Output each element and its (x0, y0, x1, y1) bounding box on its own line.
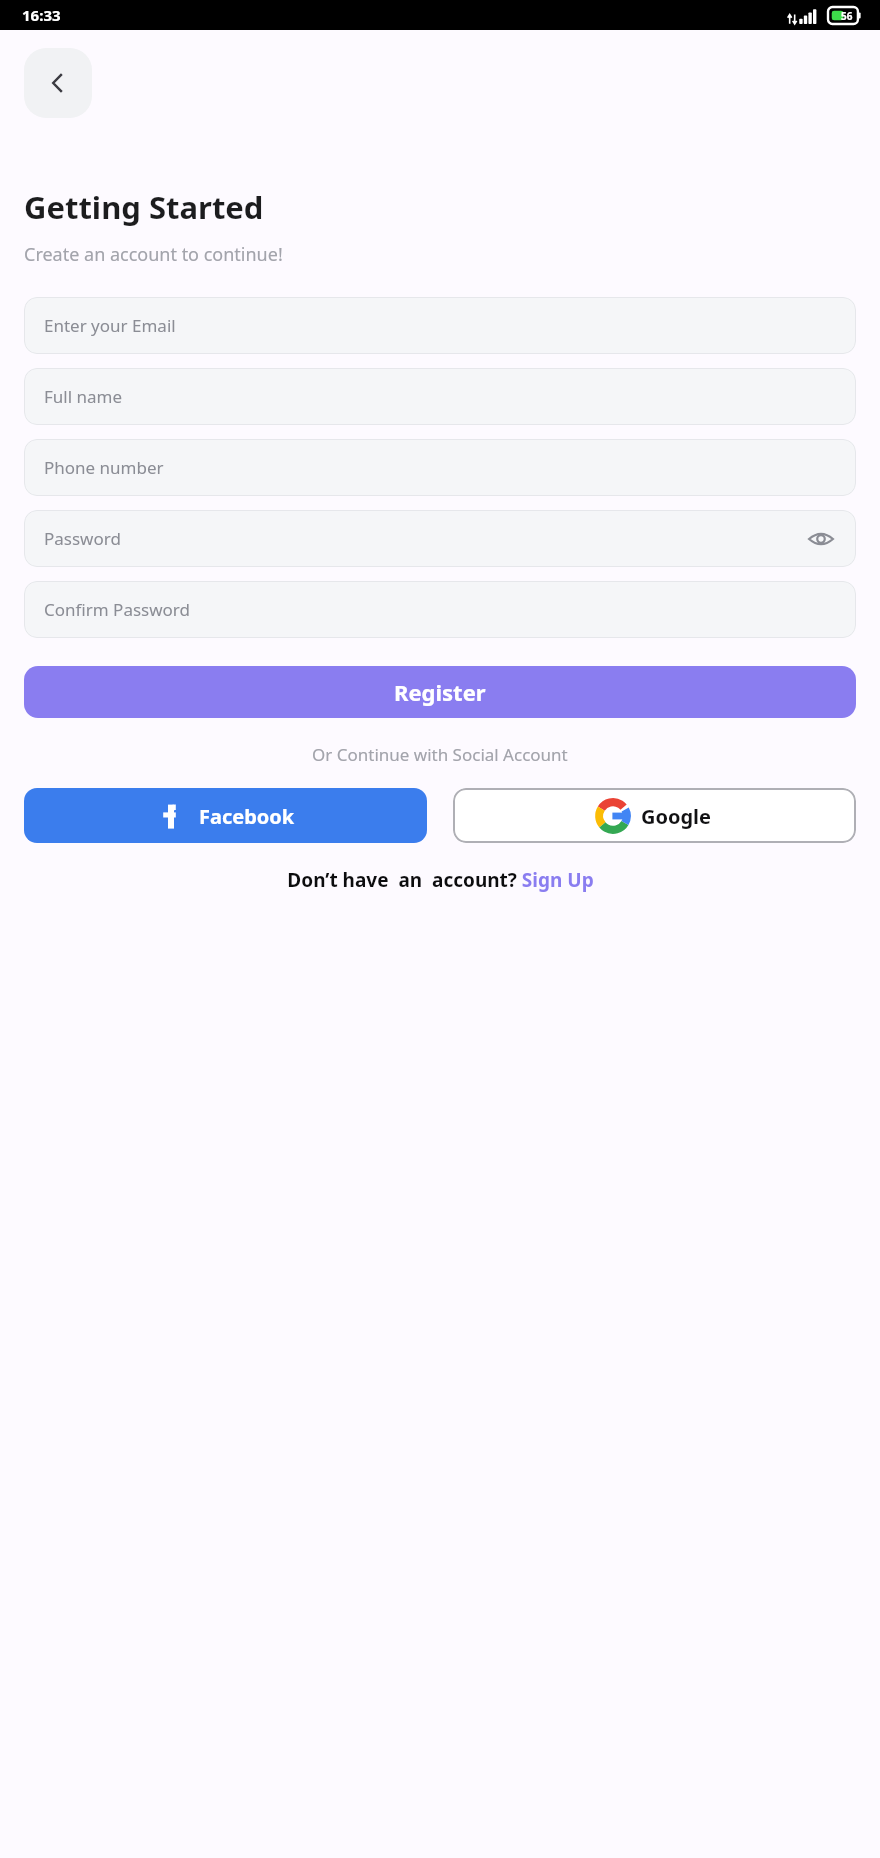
staticText: Create an account to continue! (24, 242, 283, 267)
staticText: Or Continue with Social Account (312, 743, 568, 766)
staticText: Password (44, 527, 121, 550)
staticText: Don’t have an account? Sign Up (287, 867, 594, 893)
button[interactable]: Confirm Password (24, 581, 856, 638)
button[interactable]: Enter your Email (24, 297, 856, 354)
staticText: 16:33 (22, 5, 61, 25)
button[interactable]: Don’t have an account? Sign Up (287, 867, 594, 893)
staticText: Register (394, 677, 486, 707)
button[interactable]: Back (24, 48, 92, 118)
staticText: Confirm Password (44, 598, 190, 621)
staticText: Google (641, 803, 712, 830)
staticText: Facebook (199, 803, 295, 830)
staticText: Full name (44, 385, 123, 408)
button[interactable]: Password (24, 510, 856, 567)
button[interactable]: Register (24, 666, 856, 718)
button[interactable]: Show password (804, 522, 838, 556)
button[interactable]: Phone number (24, 439, 856, 496)
staticText: 56 (841, 9, 853, 23)
button[interactable]: Google (453, 788, 856, 843)
staticText: Getting Started (24, 186, 264, 228)
staticText: Phone number (44, 456, 164, 479)
staticText: Enter your Email (44, 314, 176, 337)
button[interactable]: Facebook (24, 788, 427, 843)
button[interactable]: Full name (24, 368, 856, 425)
